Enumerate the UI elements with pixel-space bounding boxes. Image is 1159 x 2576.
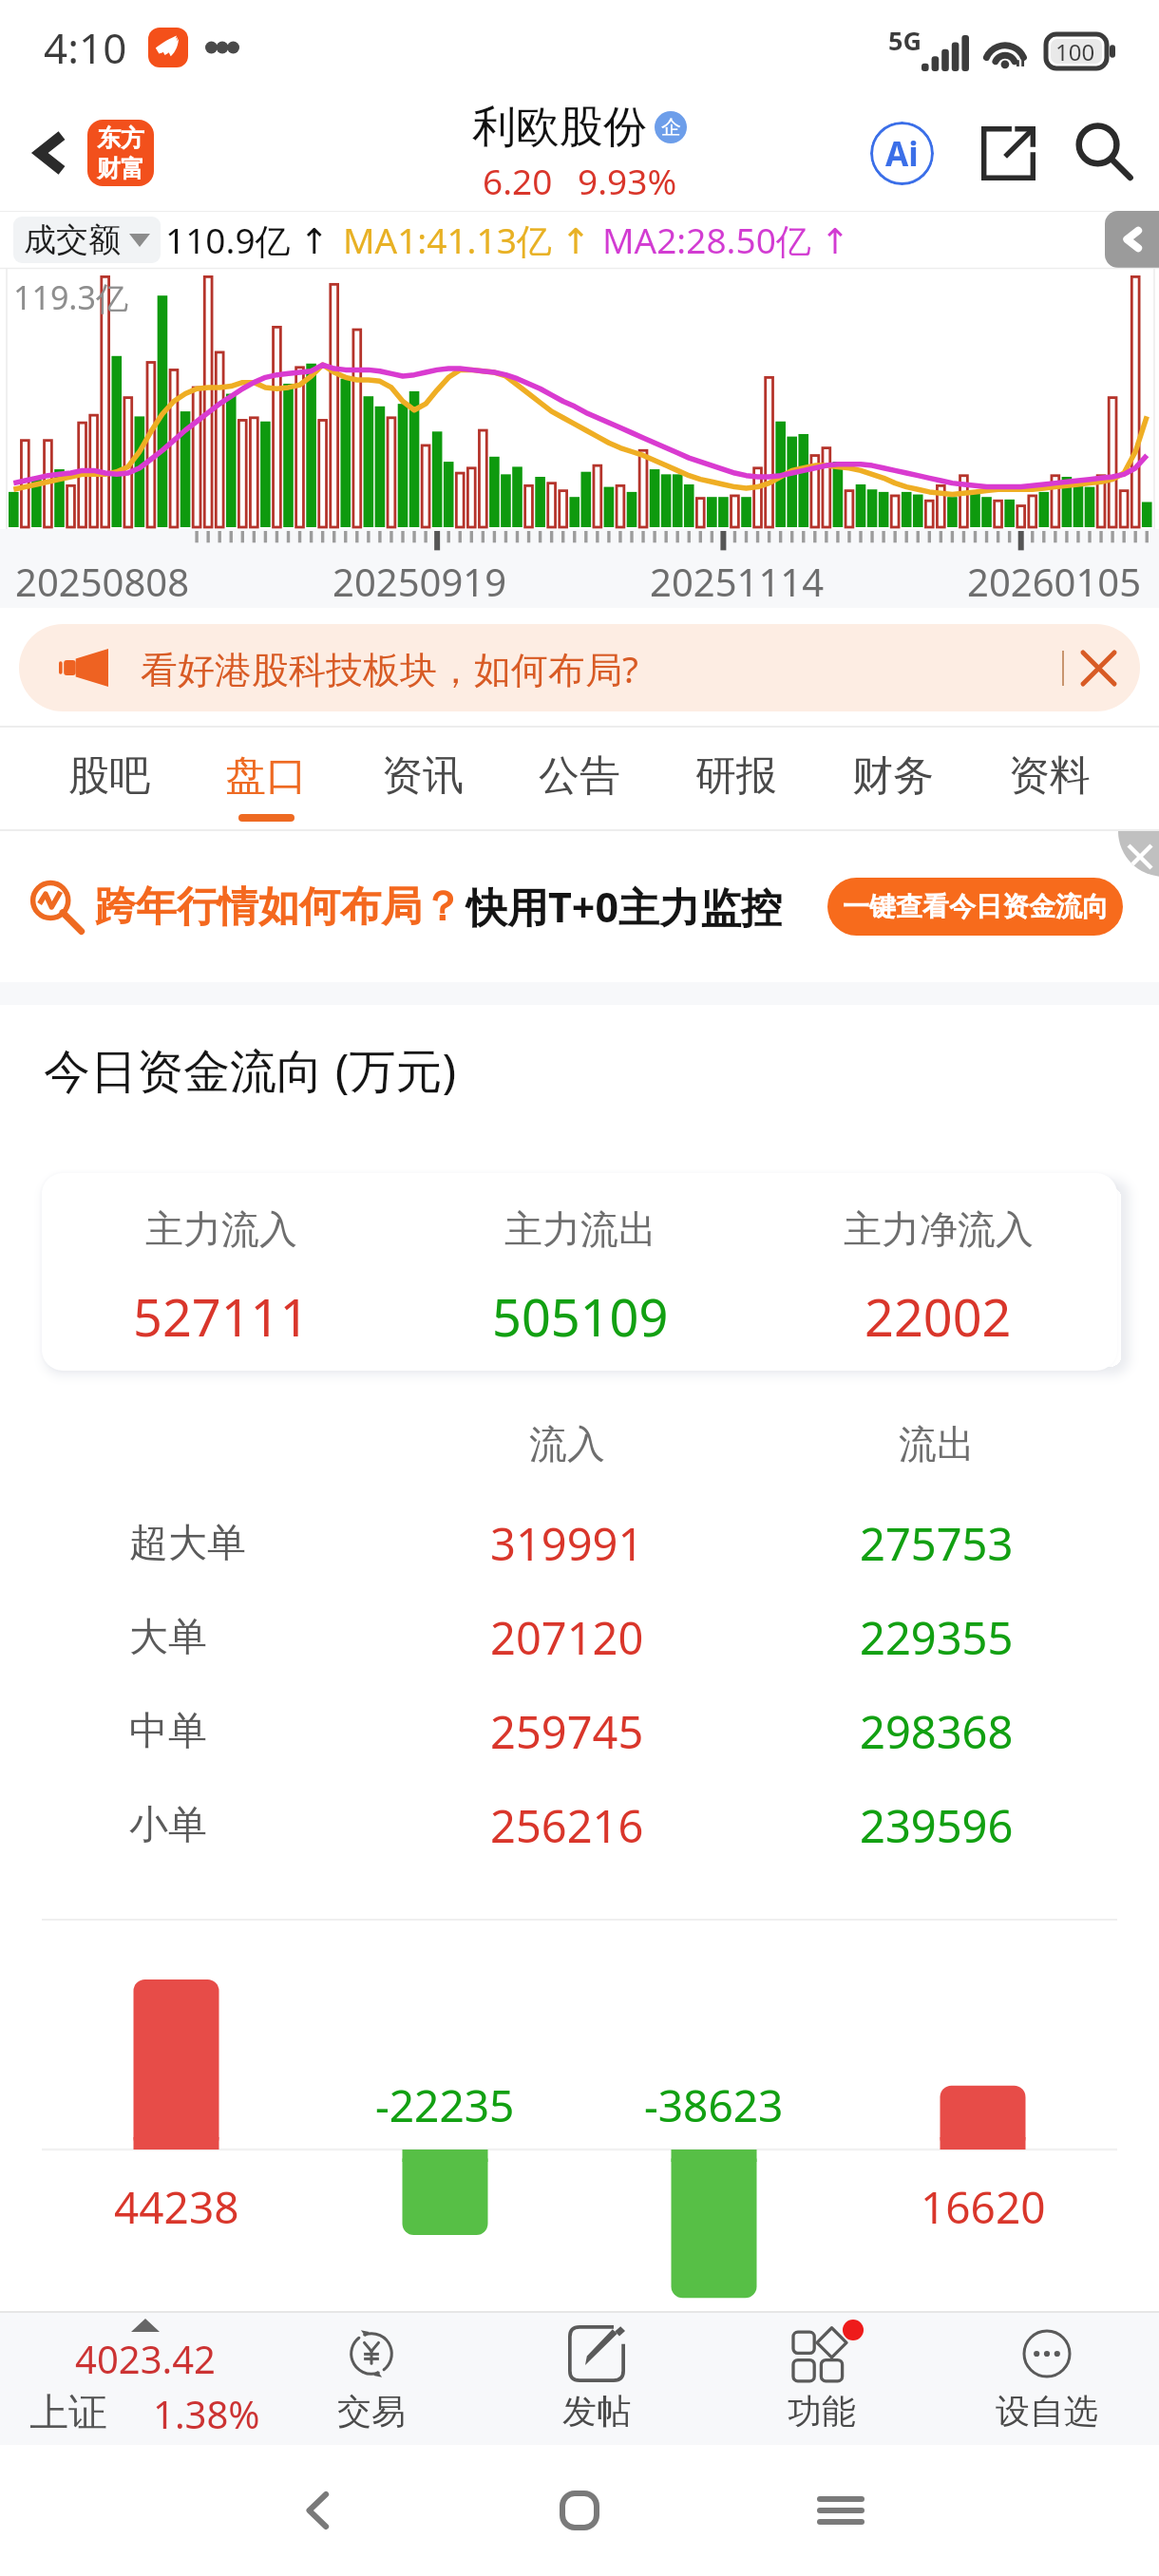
staticText: 119.3亿 [13,275,128,319]
staticText: 发帖 [562,2390,631,2433]
button[interactable]: 4023.42 [0,2313,258,2445]
staticText: 229355 [860,1607,1014,1668]
staticText: 527111 [133,1281,310,1352]
button[interactable]: 看好港股科技板块，如何布局? [19,624,1140,711]
button[interactable]: Recent apps [803,2472,879,2548]
staticText: 207120 [490,1607,644,1668]
button[interactable]: East Money home [87,120,154,186]
staticText: 239596 [860,1795,1014,1856]
staticText: 盘口 [225,750,307,802]
staticText: 股吧 [68,750,150,802]
button[interactable]: 财务 [839,728,947,829]
staticText: Ai [885,131,919,177]
button[interactable]: 交易 [258,2313,484,2445]
button[interactable]: 资料 [996,728,1104,829]
button[interactable]: 研报 [682,728,790,829]
button[interactable]: AI assistant [864,116,939,190]
staticText: 20250808 [15,556,190,607]
staticText: 4023.42 [75,2333,216,2384]
staticText: 4:10 [44,19,127,76]
staticText: 财富 [97,154,144,183]
staticText: 256216 [490,1795,644,1856]
staticText: 上证 [29,2389,107,2438]
staticText: 成交额 [24,219,121,260]
staticText: 主力流入 [145,1205,297,1253]
button[interactable]: 设自选 [934,2313,1159,2445]
staticText: 319991 [490,1513,644,1574]
staticText: 100 [1055,36,1095,67]
staticText: 资讯 [382,750,464,802]
button[interactable]: Collapse chart [1105,211,1159,268]
staticText: 1.38% [153,2388,260,2439]
staticText: 设自选 [996,2390,1098,2433]
staticText: 110.9亿 ↑ [165,216,330,264]
button[interactable]: 公告 [525,728,634,829]
staticText: 企 [661,115,681,140]
staticText: -38623 [644,2075,784,2135]
staticText: 大单 [129,1613,207,1662]
button[interactable]: 一键查看今日资金流向 [827,878,1123,936]
staticText: 275753 [860,1513,1014,1574]
button[interactable]: 发帖 [484,2313,709,2445]
staticText: 资料 [1009,750,1091,802]
staticText: MA2:28.50亿 ↑ [602,216,850,264]
staticText: 主力净流入 [844,1205,1034,1253]
staticText: 22002 [864,1281,1012,1352]
staticText: 看好港股科技板块，如何布局? [141,643,638,693]
button[interactable]: 功能 [709,2313,934,2445]
staticText: 小单 [129,1801,207,1850]
staticText: 流出 [899,1420,975,1468]
button[interactable]: 成交额 [13,217,161,263]
staticText: 6.20 [483,157,553,204]
button[interactable]: 盘口 [212,728,320,829]
staticText: 流入 [529,1420,605,1468]
staticText: MA1:41.13亿 ↑ [343,216,591,264]
staticText: 功能 [788,2390,856,2433]
staticText: 298368 [860,1701,1014,1762]
button[interactable]: Back [280,2472,356,2548]
staticText: 44238 [114,2177,239,2237]
button[interactable]: Search [1068,116,1142,190]
button[interactable]: 股吧 [55,728,163,829]
staticText: 中单 [129,1707,207,1756]
staticText: 财务 [852,750,934,802]
button[interactable]: Home [541,2472,617,2548]
button[interactable]: Close advertisement [1118,831,1159,877]
staticText: -22235 [375,2075,515,2135]
staticText: 20250919 [332,556,507,607]
staticText: 快用T+0主力监控 [466,879,783,935]
staticText: 20260105 [967,556,1142,607]
staticText: 超大单 [129,1519,246,1568]
staticText: 利欧股份 [472,100,647,155]
button[interactable]: Close banner [1068,637,1129,698]
staticText: 东方 [97,123,144,153]
staticText: 5G [888,23,921,58]
staticText: 259745 [490,1701,644,1762]
button[interactable]: Back [15,118,85,188]
staticText: 16620 [921,2177,1046,2237]
staticText: 研报 [695,750,777,802]
button[interactable]: 资讯 [369,728,477,829]
staticText: 一键查看今日资金流向 [843,890,1109,923]
staticText: 主力流出 [504,1205,656,1253]
staticText: 今日资金流向 (万元) [44,1038,457,1102]
staticText: 公告 [539,750,620,802]
button[interactable]: Share [971,116,1045,190]
staticText: 20251114 [650,556,825,607]
staticText: 交易 [337,2390,406,2433]
staticText: 505109 [492,1281,669,1352]
staticText: 跨年行情如何布局？ [95,881,463,933]
staticText: 9.93% [578,157,677,204]
